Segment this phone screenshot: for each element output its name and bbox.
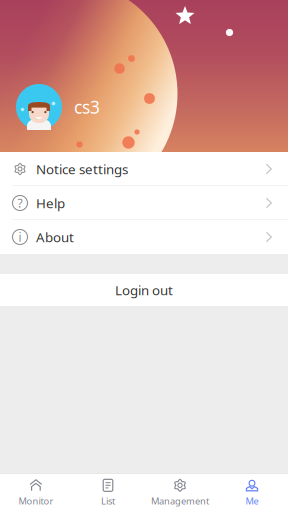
staticText: cs3: [74, 95, 100, 118]
staticText: Notice settings: [36, 160, 128, 178]
staticText: Help: [36, 194, 65, 212]
button[interactable]: Management: [144, 474, 216, 512]
staticText: Me: [245, 495, 258, 507]
staticText: List: [101, 495, 115, 507]
button[interactable]: Monitor: [0, 474, 72, 512]
button[interactable]: Me: [216, 474, 288, 512]
button[interactable]: Notice settings: [0, 152, 288, 186]
button[interactable]: List: [72, 474, 144, 512]
staticText: Monitor: [18, 495, 53, 507]
button[interactable]: ?: [0, 186, 288, 220]
staticText: ?: [17, 195, 22, 211]
staticText: Login out: [115, 281, 173, 299]
staticText: Management: [151, 495, 209, 507]
staticText: i: [18, 229, 21, 245]
button[interactable]: Login out: [0, 274, 288, 306]
button[interactable]: i: [0, 220, 288, 254]
staticText: About: [36, 228, 74, 246]
